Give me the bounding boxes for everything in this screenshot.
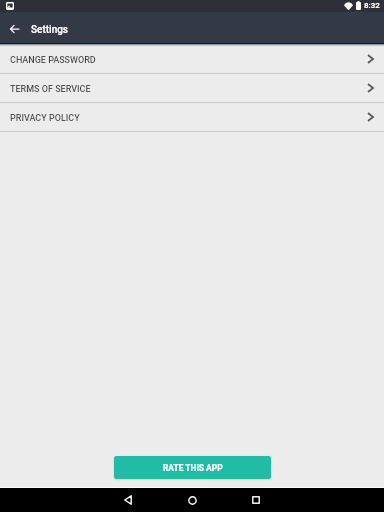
staticText: CHANGE PASSWORD [10,55,96,66]
staticText: RATE THIS APP [163,463,223,473]
button[interactable]: Back [0,12,28,43]
staticText: 8:32 [364,1,380,10]
button[interactable]: CHANGE PASSWORD [0,45,384,73]
button[interactable]: Back [96,488,160,512]
button[interactable]: RATE THIS APP [114,456,271,479]
staticText: Settings [31,24,69,36]
staticText: TERMS OF SERVICE [10,84,91,95]
button[interactable]: Recent apps [224,488,288,512]
staticText: PRIVACY POLICY [10,113,80,124]
button[interactable]: PRIVACY POLICY [0,103,384,131]
button[interactable]: TERMS OF SERVICE [0,74,384,102]
button[interactable]: Home [160,488,224,512]
